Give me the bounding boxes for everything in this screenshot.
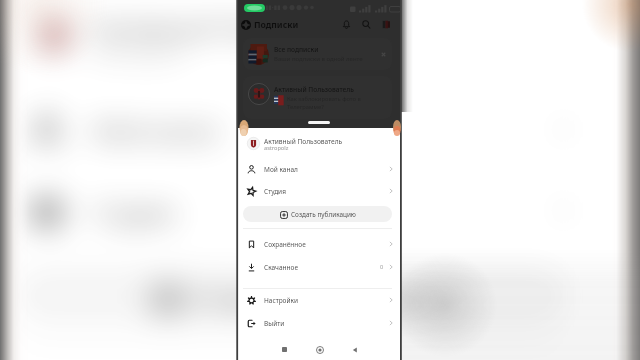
staticText: Все подписки xyxy=(274,45,319,54)
staticText: Активный Пользователь xyxy=(93,11,385,44)
staticText: Активный Пользователь xyxy=(264,137,343,146)
button[interactable]: Поиск xyxy=(359,17,374,32)
staticText: Мой канал xyxy=(93,114,219,148)
staticText: astropolz xyxy=(93,37,186,66)
button[interactable]: Недавние приложения xyxy=(276,341,293,358)
staticText: Подписки xyxy=(254,19,299,31)
button[interactable]: Выйти xyxy=(238,313,401,333)
button[interactable]: Студия xyxy=(238,181,401,201)
staticText: Выйти xyxy=(264,319,285,328)
button[interactable]: Профиль xyxy=(380,18,393,31)
button[interactable]: Активный Пользователь xyxy=(243,76,392,119)
button[interactable]: Скачанное xyxy=(238,257,401,277)
button[interactable]: Все подписки xyxy=(243,38,392,70)
button[interactable] xyxy=(238,131,401,155)
staticText: 0 xyxy=(380,263,384,271)
button[interactable]: Домой xyxy=(311,341,328,358)
staticText: Скачанное xyxy=(264,263,298,272)
button[interactable]: Мой канал xyxy=(238,159,401,179)
staticText: Создать публикацию xyxy=(291,210,356,219)
staticText: Мой канал xyxy=(264,165,298,174)
button[interactable]: Настройки xyxy=(238,290,401,310)
button[interactable]: Сохранённое xyxy=(238,234,401,254)
button[interactable]: Уведомления xyxy=(339,17,354,32)
button[interactable]: Назад xyxy=(346,341,363,358)
staticText: Студия xyxy=(264,187,286,196)
staticText: Сохранённое xyxy=(264,240,306,249)
staticText: Студия xyxy=(93,196,175,229)
button[interactable]: Создать публикацию xyxy=(243,206,392,222)
staticText: Создать публикацию xyxy=(193,281,434,314)
staticText: Настройки xyxy=(264,296,299,305)
staticText: astropolz xyxy=(264,144,289,152)
staticText: Активный Пользователь xyxy=(274,85,354,94)
